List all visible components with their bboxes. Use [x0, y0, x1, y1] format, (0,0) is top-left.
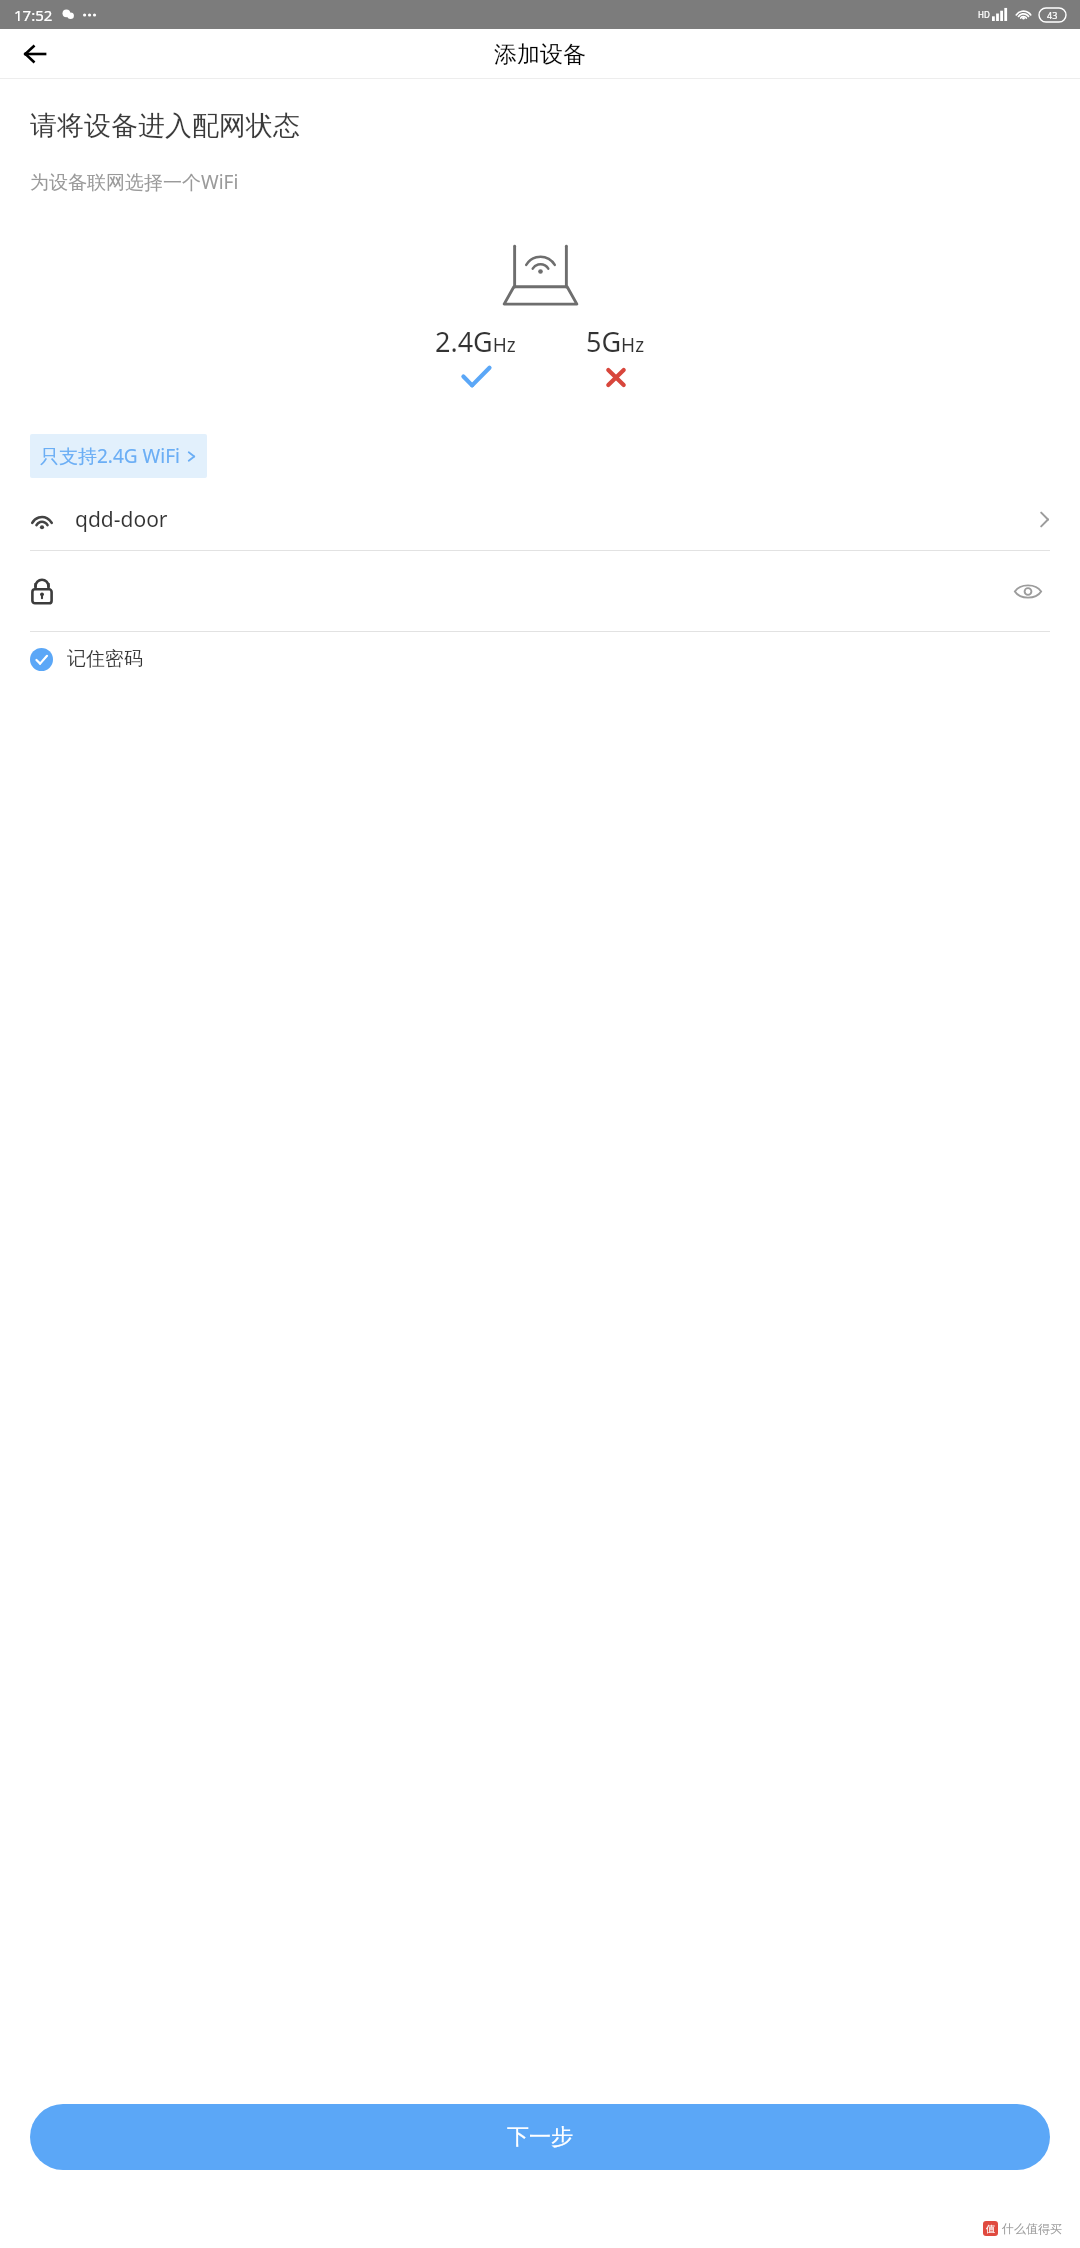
staticText: 5GHz [586, 323, 645, 360]
staticText: 只支持2.4G WiFi [40, 443, 180, 469]
button[interactable]: qdd-door [30, 488, 1050, 550]
button[interactable]: 下一步 [30, 2104, 1050, 2170]
staticText: 43 [1047, 9, 1058, 21]
staticText: 为设备联网选择一个WiFi [30, 169, 239, 195]
staticText: HD [978, 9, 990, 20]
staticText: 记住密码 [67, 647, 143, 671]
staticText: 2.4GHz [435, 323, 516, 360]
staticText: 值 [986, 2223, 995, 2234]
button[interactable]: Show password [1006, 569, 1050, 613]
button[interactable]: Back [14, 33, 56, 75]
staticText: 请将设备进入配网状态 [30, 109, 300, 143]
staticText: qdd-door [75, 505, 168, 534]
staticText: 17:52 [14, 5, 53, 25]
staticText: 什么值得买 [1002, 2221, 1062, 2236]
button[interactable]: 记住密码 [30, 632, 1080, 686]
button[interactable]: 只支持2.4G WiFi [30, 434, 207, 478]
staticText: 添加设备 [494, 40, 586, 69]
staticText: 下一步 [507, 2123, 573, 2151]
